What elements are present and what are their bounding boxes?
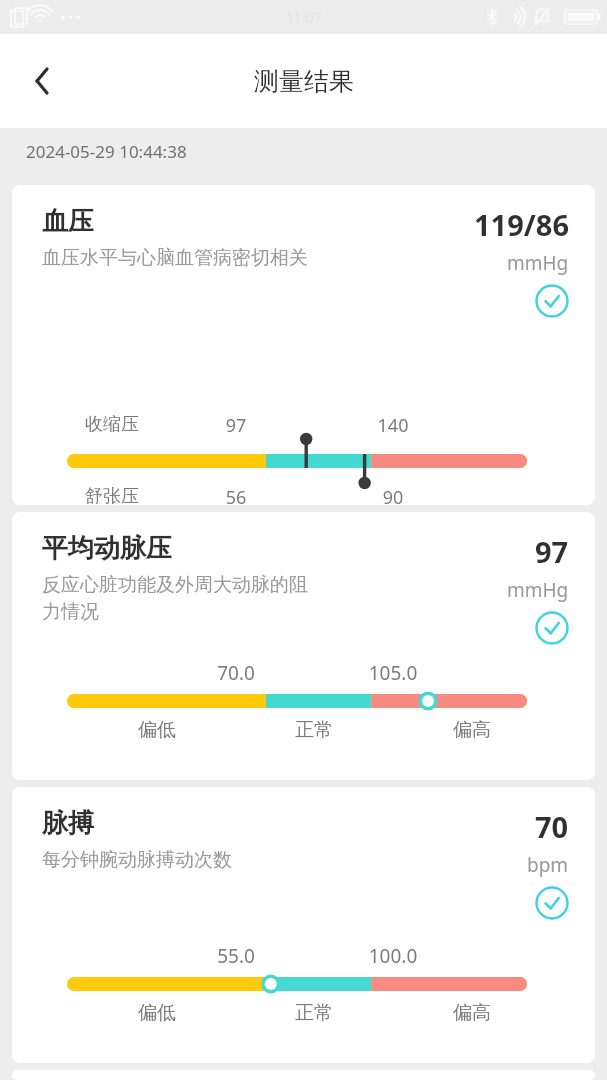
staticText: mmHg <box>507 250 569 276</box>
staticText: 105.0 <box>357 660 429 686</box>
staticText: 血压水平与心脑血管病密切相关 <box>42 246 308 270</box>
staticText: 正常 <box>278 718 350 742</box>
staticText: bpm <box>527 852 569 878</box>
staticText: 每分钟腕动脉搏动次数 <box>42 848 232 872</box>
staticText: 97 <box>200 413 272 437</box>
staticText: 97 <box>535 532 569 571</box>
staticText: 偏低 <box>121 718 193 742</box>
button[interactable]: Back <box>14 53 70 109</box>
staticText: 收缩压 <box>76 413 148 436</box>
staticText: 偏高 <box>436 1001 508 1025</box>
button[interactable]: 血压 <box>12 185 595 505</box>
staticText: 119/86 <box>474 205 569 244</box>
staticText: 舒张压 <box>76 485 148 505</box>
staticText: 2024-05-29 10:44:38 <box>26 140 187 163</box>
staticText: mmHg <box>507 577 569 603</box>
button[interactable]: 平均动脉压 <box>12 512 595 780</box>
staticText: 70 <box>535 807 569 846</box>
staticText: 血压 <box>42 205 94 238</box>
staticText: 70.0 <box>200 660 272 686</box>
staticText: 偏低 <box>121 1001 193 1025</box>
staticText: 反应心脏功能及外周大动脉的阻 力情况 <box>42 573 308 624</box>
staticText: 正常 <box>278 1001 350 1025</box>
staticText: 55.0 <box>200 943 272 969</box>
staticText: 100.0 <box>357 943 429 969</box>
staticText: 测量结果 <box>254 66 354 97</box>
staticText: 偏高 <box>436 718 508 742</box>
button[interactable]: 脉搏 <box>12 787 595 1063</box>
staticText: 脉搏 <box>42 807 94 840</box>
staticText: 140 <box>357 413 429 437</box>
staticText: 56 <box>200 485 272 505</box>
staticText: 平均动脉压 <box>42 532 172 565</box>
staticText: 90 <box>357 485 429 505</box>
